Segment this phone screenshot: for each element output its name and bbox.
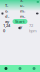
staticText: Today [5, 3, 9, 24]
staticText: 1,240 [3, 23, 10, 33]
staticText: Start [15, 19, 25, 24]
button[interactable]: Profile [36, 13, 39, 14]
staticText: 72 bpm [29, 23, 37, 33]
button[interactable]: Menu [1, 12, 3, 14]
button[interactable]: Start [12, 19, 27, 24]
staticText: Summary [20, 0, 25, 29]
button[interactable]: Status [37, 1, 39, 3]
button[interactable]: Home [0, 65, 13, 72]
button[interactable]: Activity [13, 65, 27, 72]
button[interactable]: Settings [27, 65, 40, 72]
